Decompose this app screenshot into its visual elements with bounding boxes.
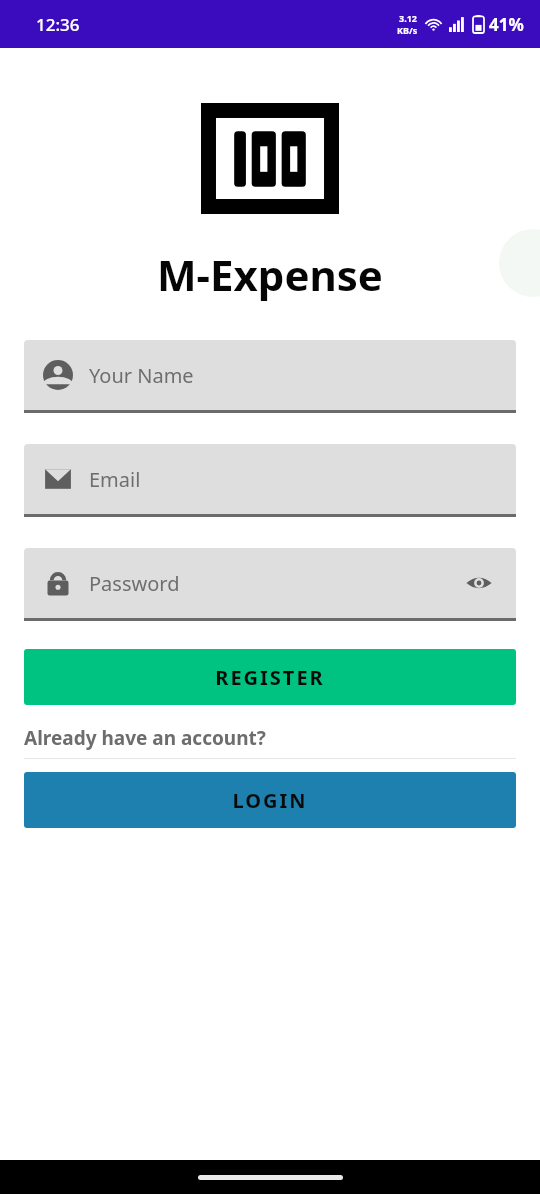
staticText: 41% (489, 13, 524, 36)
staticText: 3.12 (399, 12, 417, 24)
button[interactable]: Email (24, 444, 516, 517)
button[interactable]: Show password (464, 568, 494, 598)
staticText: Password (89, 570, 180, 597)
button[interactable]: REGISTER (24, 649, 516, 705)
staticText: M-Expense (157, 246, 383, 303)
staticText: KB/s (397, 24, 418, 36)
staticText: Your Name (89, 362, 194, 389)
button[interactable]: Your Name (24, 340, 516, 413)
staticText: Email (89, 466, 141, 493)
button[interactable]: LOGIN (24, 772, 516, 828)
staticText: 12:36 (36, 13, 80, 36)
staticText: REGISTER (215, 664, 325, 691)
staticText: Already have an account? (24, 725, 266, 751)
button[interactable]: Password (24, 548, 516, 621)
staticText: LOGIN (232, 787, 308, 814)
